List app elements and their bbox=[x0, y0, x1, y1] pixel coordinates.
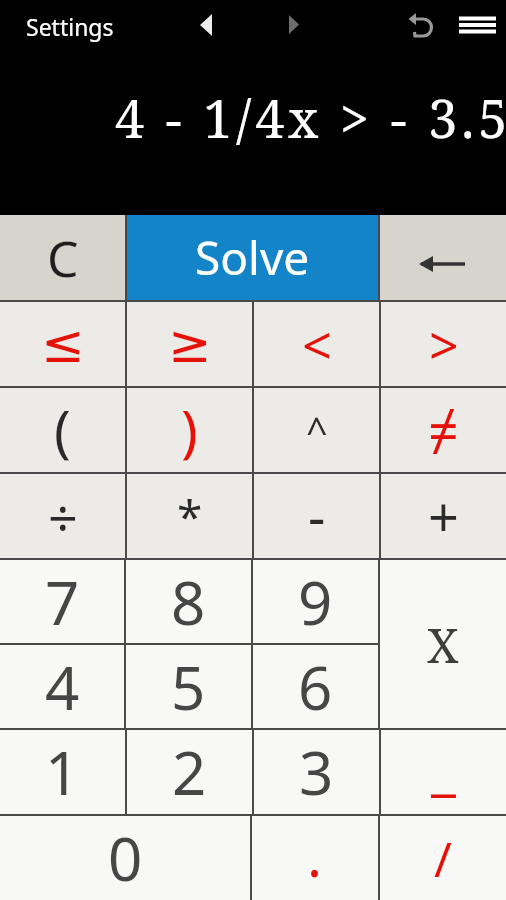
button[interactable]: / bbox=[380, 816, 506, 900]
button[interactable]: - bbox=[254, 474, 379, 558]
button[interactable]: _ bbox=[381, 730, 506, 814]
button[interactable]: 6 bbox=[253, 645, 378, 728]
button[interactable]: < bbox=[254, 302, 379, 386]
staticText: 7 bbox=[45, 561, 80, 643]
button[interactable]: 3 bbox=[254, 730, 379, 814]
staticText: 0 bbox=[108, 817, 143, 899]
staticText: > bbox=[429, 309, 459, 380]
button[interactable]: 7 bbox=[0, 560, 124, 643]
button[interactable]: 5 bbox=[126, 645, 251, 728]
button[interactable]: 4 bbox=[0, 645, 124, 728]
staticText: 1 bbox=[45, 731, 80, 813]
button[interactable]: . bbox=[252, 816, 378, 900]
button[interactable]: ) bbox=[127, 388, 252, 472]
staticText: / bbox=[434, 826, 452, 891]
staticText: ÷ bbox=[48, 481, 78, 552]
staticText: X bbox=[427, 612, 459, 677]
staticText: ) bbox=[181, 392, 198, 468]
staticText: 5 bbox=[171, 646, 206, 728]
button[interactable] bbox=[186, 4, 226, 46]
staticText: C bbox=[47, 224, 79, 292]
button[interactable]: X bbox=[380, 560, 506, 728]
staticText: Settings bbox=[26, 11, 114, 42]
button[interactable]: 2 bbox=[127, 730, 252, 814]
staticText: 3 bbox=[299, 731, 334, 813]
staticText: ≥ bbox=[168, 314, 212, 375]
staticText: 9 bbox=[298, 561, 333, 643]
button[interactable]: C bbox=[0, 215, 125, 300]
staticText: ≠ bbox=[428, 393, 459, 467]
button[interactable]: * bbox=[127, 474, 252, 558]
staticText: . bbox=[307, 817, 323, 893]
staticText: ^ bbox=[306, 404, 328, 456]
staticText: * bbox=[177, 485, 203, 548]
button[interactable]: > bbox=[381, 302, 506, 386]
button[interactable]: ÷ bbox=[0, 474, 125, 558]
button[interactable]: Solve bbox=[127, 215, 378, 300]
staticText: 8 bbox=[171, 561, 206, 643]
staticText: < bbox=[302, 309, 332, 380]
staticText: ( bbox=[54, 392, 71, 468]
button[interactable] bbox=[380, 215, 506, 300]
staticText: _ bbox=[431, 729, 456, 805]
staticText: 4 - 1/4x > - 3.5 bbox=[115, 82, 506, 153]
staticText: 4 bbox=[45, 646, 80, 728]
staticText: 6 bbox=[298, 646, 333, 728]
button[interactable]: + bbox=[381, 474, 506, 558]
staticText: ≤ bbox=[41, 314, 85, 375]
button[interactable]: 9 bbox=[253, 560, 378, 643]
button[interactable]: ≠ bbox=[381, 388, 506, 472]
button[interactable]: 0 bbox=[0, 816, 250, 900]
staticText: - bbox=[308, 479, 326, 553]
button[interactable]: ( bbox=[0, 388, 125, 472]
button[interactable] bbox=[275, 4, 315, 46]
staticText: 2 bbox=[172, 731, 207, 813]
button[interactable]: ≤ bbox=[0, 302, 125, 386]
staticText: Solve bbox=[195, 226, 310, 289]
button[interactable]: 1 bbox=[0, 730, 125, 814]
button[interactable] bbox=[452, 4, 502, 46]
button[interactable]: Settings bbox=[26, 11, 114, 42]
button[interactable]: ≥ bbox=[127, 302, 252, 386]
staticText: + bbox=[428, 479, 459, 553]
button[interactable]: ^ bbox=[254, 388, 379, 472]
button[interactable]: 8 bbox=[126, 560, 251, 643]
button[interactable] bbox=[404, 8, 444, 50]
